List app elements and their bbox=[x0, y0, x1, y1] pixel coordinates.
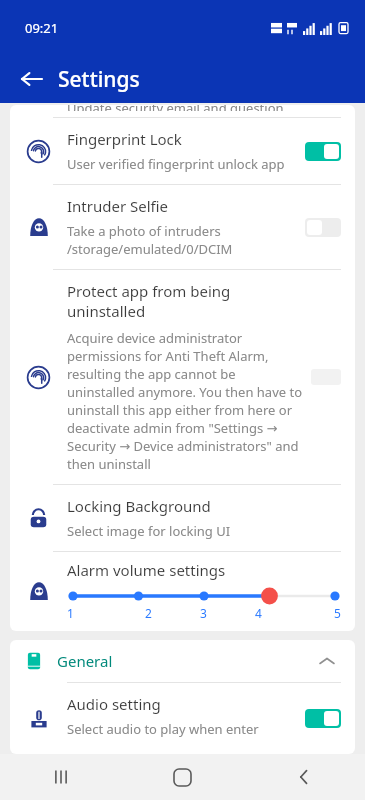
button[interactable]: Intruder Selfie bbox=[10, 185, 355, 269]
staticText: General bbox=[57, 651, 113, 671]
staticText: User verified fingerprint unlock app bbox=[67, 155, 285, 173]
staticText: 3 bbox=[200, 605, 207, 621]
staticText: Audio setting bbox=[67, 694, 161, 714]
button[interactable]: Back bbox=[243, 754, 365, 800]
staticText: Locking Background bbox=[67, 496, 211, 516]
staticText: Settings bbox=[58, 65, 140, 94]
button[interactable]: Fingerprint Lock bbox=[10, 118, 355, 184]
button[interactable]: Audio setting bbox=[10, 683, 355, 754]
button[interactable]: General bbox=[10, 640, 355, 682]
staticText: Protect app from being uninstalled bbox=[67, 281, 305, 321]
button[interactable]: Home bbox=[121, 754, 243, 800]
button[interactable] bbox=[305, 709, 341, 728]
staticText: Alarm volume settings bbox=[67, 560, 226, 580]
staticText: 5 bbox=[334, 605, 341, 621]
staticText: Take a photo of intruders /storage/emula… bbox=[67, 222, 233, 258]
staticText: Intruder Selfie bbox=[67, 196, 169, 216]
button[interactable]: Recents bbox=[0, 754, 121, 800]
staticText: Update security email and question bbox=[67, 105, 284, 111]
button[interactable]: Protect app from being uninstalled bbox=[10, 270, 355, 484]
staticText: Select audio to play when enter wrong pa… bbox=[67, 720, 299, 743]
button[interactable] bbox=[67, 588, 341, 604]
staticText: 09:21 bbox=[25, 19, 59, 37]
staticText: Acquire device administrator permissions… bbox=[67, 329, 305, 473]
staticText: 2 bbox=[145, 605, 152, 621]
button[interactable]: Alarm volume settings bbox=[10, 552, 355, 631]
button[interactable] bbox=[305, 218, 341, 237]
staticText: Select image for locking UI bbox=[67, 522, 231, 540]
staticText: Fingerprint Lock bbox=[67, 129, 182, 149]
staticText: 1 bbox=[67, 605, 74, 621]
button[interactable]: Back bbox=[14, 61, 50, 97]
staticText: 4 bbox=[255, 605, 262, 621]
button[interactable] bbox=[305, 142, 341, 161]
button[interactable]: Locking Background bbox=[10, 485, 355, 551]
